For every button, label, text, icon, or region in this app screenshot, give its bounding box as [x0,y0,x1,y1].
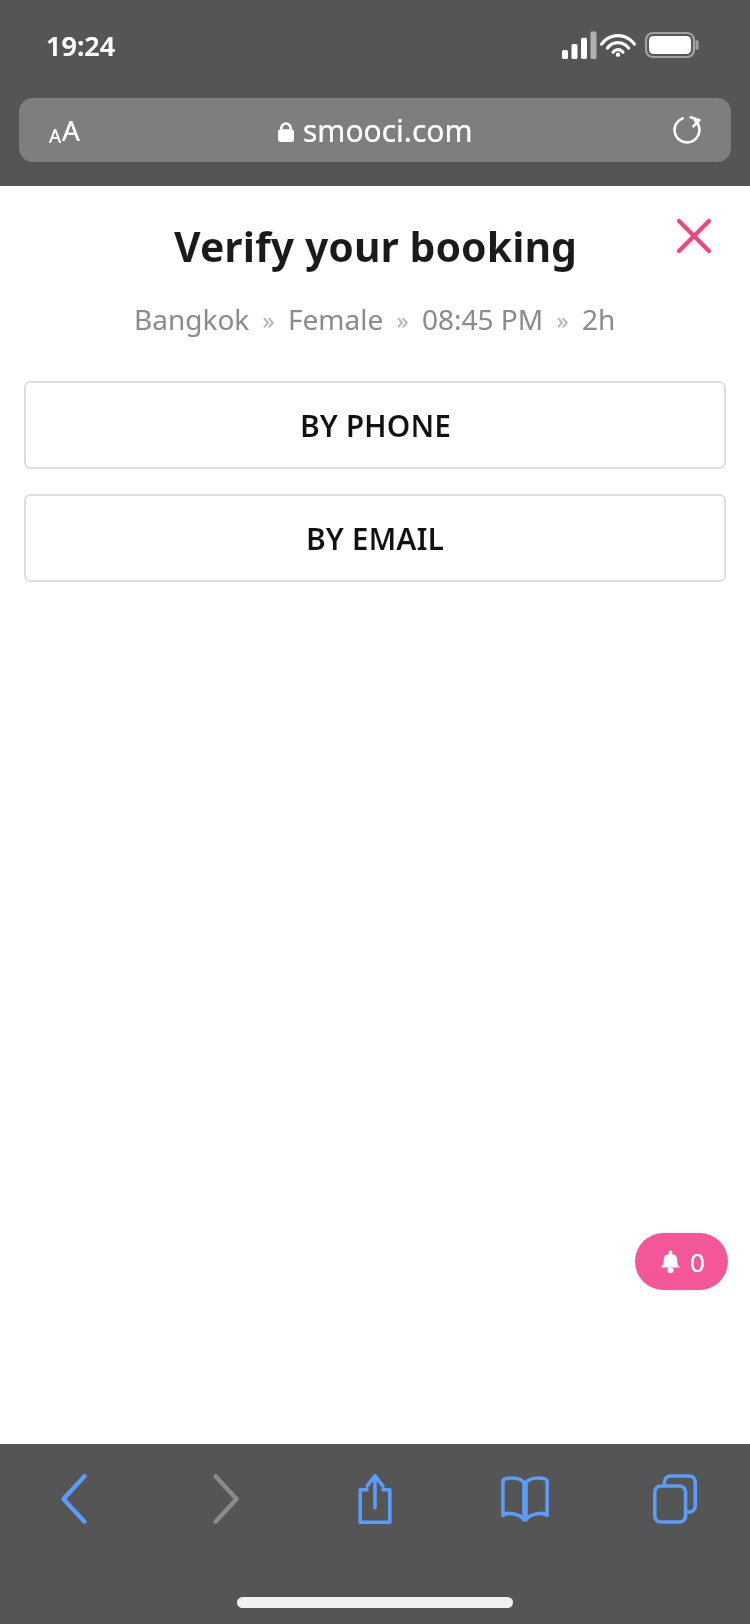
staticText: » [544,303,582,336]
button[interactable]: Bookmarks [450,1444,600,1554]
staticText: BY EMAIL [306,518,444,559]
button[interactable]: Share [300,1444,450,1554]
button[interactable]: Tabs [600,1444,750,1554]
staticText: Female [288,300,384,338]
staticText: Verify your booking [174,218,577,274]
staticText: 2h [582,300,616,338]
button[interactable]: Back [0,1444,150,1554]
staticText: Bangkok [134,300,250,338]
button[interactable]: BY PHONE [24,381,726,469]
button[interactable]: Forward [150,1444,300,1554]
staticText: » [250,303,288,336]
staticText: smooci.com [303,110,473,151]
staticText: A [49,123,62,149]
button[interactable]: BY EMAIL [24,494,726,582]
staticText: 19:24 [46,27,116,64]
staticText: BY PHONE [300,405,451,446]
staticText: » [384,303,422,336]
button[interactable]: 0 [635,1233,728,1290]
button[interactable]: Close [666,208,722,264]
button[interactable]: Reload [665,108,709,152]
button[interactable]: A [19,98,731,162]
staticText: A [62,111,80,149]
staticText: 08:45 PM [422,300,544,338]
staticText: 0 [690,1244,705,1279]
